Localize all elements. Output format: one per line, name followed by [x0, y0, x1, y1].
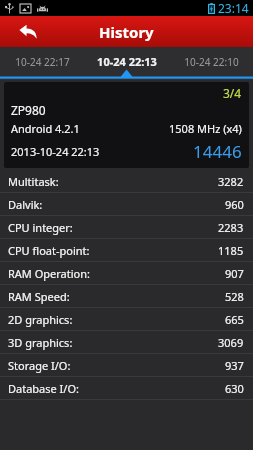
- staticText: 630: [225, 381, 244, 396]
- staticText: RAM Operation:: [8, 266, 90, 281]
- staticText: 10-24 22:17: [15, 55, 70, 69]
- button[interactable]: 3D graphics:: [0, 331, 253, 353]
- button[interactable]: 3/4: [4, 82, 249, 168]
- staticText: 1185: [218, 243, 244, 258]
- staticText: 3D graphics:: [8, 335, 73, 350]
- staticText: 3069: [218, 335, 244, 350]
- staticText: Multitask:: [8, 174, 59, 189]
- staticText: 2D graphics:: [8, 312, 73, 327]
- button[interactable]: CPU integer:: [0, 216, 253, 238]
- staticText: 665: [225, 312, 244, 327]
- staticText: 528: [225, 289, 244, 304]
- staticText: CPU float-point:: [8, 243, 90, 258]
- staticText: CPU integer:: [8, 220, 73, 235]
- staticText: 14446: [193, 140, 242, 163]
- staticText: Dalvik:: [8, 197, 43, 212]
- staticText: 3282: [218, 174, 244, 189]
- staticText: 10-24 22:10: [184, 55, 239, 69]
- staticText: 937: [225, 358, 244, 373]
- staticText: 2013-10-24 22:13: [11, 144, 100, 159]
- button[interactable]: 2D graphics:: [0, 308, 253, 330]
- staticText: 907: [225, 266, 244, 281]
- button[interactable]: 10-24 22:10: [169, 47, 253, 76]
- staticText: ZP980: [11, 102, 46, 118]
- staticText: 2283: [218, 220, 244, 235]
- button[interactable]: Dalvik:: [0, 193, 253, 215]
- button[interactable]: Multitask:: [0, 170, 253, 192]
- staticText: Android 4.2.1: [11, 121, 80, 136]
- staticText: 960: [225, 197, 244, 212]
- button[interactable]: Back: [0, 16, 56, 47]
- staticText: 23:14: [218, 0, 249, 16]
- staticText: 10-24 22:13: [97, 54, 157, 69]
- button[interactable]: 10-24 22:17: [0, 47, 85, 76]
- staticText: Storage I/O:: [8, 358, 71, 373]
- button[interactable]: CPU float-point:: [0, 239, 253, 261]
- button[interactable]: 10-24 22:13: [85, 47, 169, 76]
- button[interactable]: Storage I/O:: [0, 354, 253, 376]
- button[interactable]: RAM Speed:: [0, 285, 253, 307]
- staticText: 1508 MHz (x4): [169, 121, 242, 136]
- staticText: RAM Speed:: [8, 289, 70, 304]
- staticText: History: [99, 22, 154, 42]
- staticText: 3/4: [223, 85, 242, 101]
- button[interactable]: Database I/O:: [0, 377, 253, 399]
- staticText: Database I/O:: [8, 381, 79, 396]
- button[interactable]: RAM Operation:: [0, 262, 253, 284]
